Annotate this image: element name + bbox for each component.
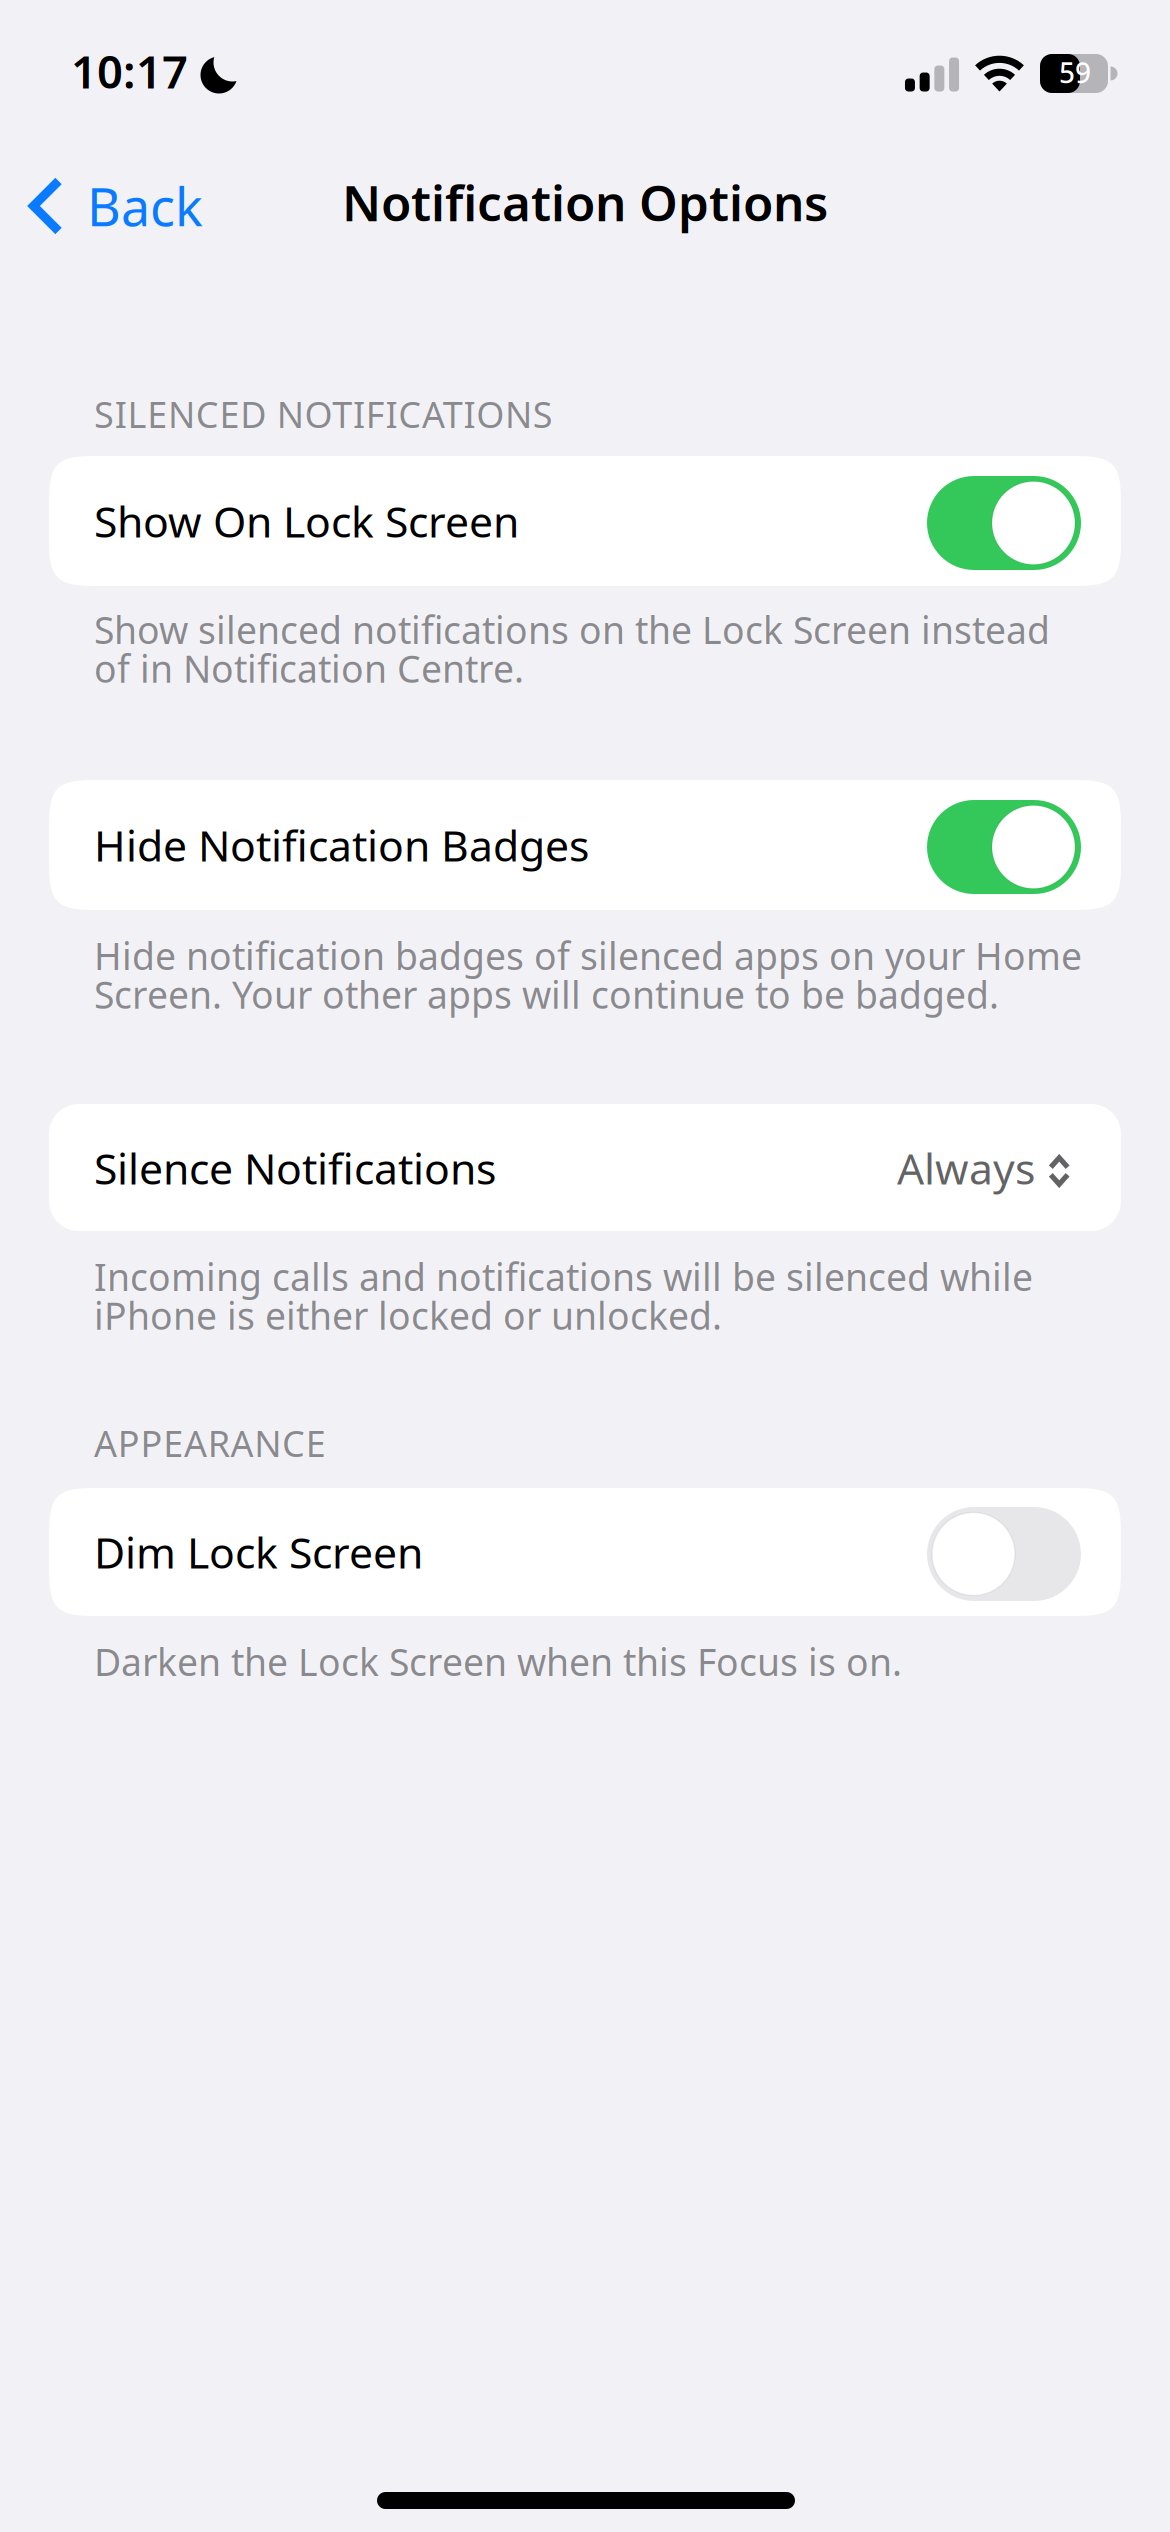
staticText: iPhone is either locked or unlocked. [94,1290,722,1340]
staticText: Back [87,171,203,241]
staticText: SILENCED NOTIFICATIONS [94,390,553,438]
staticText: 59 [1059,54,1091,91]
staticText: Hide notification badges of silenced app… [94,931,1082,980]
staticText: Silence Notifications [94,1140,496,1196]
button[interactable]: Hide Notification Badges [49,780,1121,910]
button[interactable]: Dim Lock Screen [49,1488,1121,1616]
button[interactable]: Back [0,178,229,234]
staticText: APPEARANCE [94,1419,326,1467]
staticText: Show silenced notifications on the Lock … [94,605,1050,654]
staticText: Dim Lock Screen [94,1524,423,1580]
staticText: Incoming calls and notifications will be… [94,1252,1033,1301]
staticText: Show On Lock Screen [94,493,519,549]
button[interactable]: Silence Notifications [49,1104,1121,1231]
staticText: Darken the Lock Screen when this Focus i… [94,1637,902,1686]
button[interactable]: Show On Lock Screen [49,456,1121,586]
staticText: Notification Options [342,169,828,235]
staticText: of in Notification Centre. [94,643,524,693]
staticText: Hide Notification Badges [94,817,589,873]
staticText: Screen. Your other apps will continue to… [94,969,999,1019]
staticText: 10:17 [71,41,188,101]
staticText: Always [897,1140,1035,1196]
